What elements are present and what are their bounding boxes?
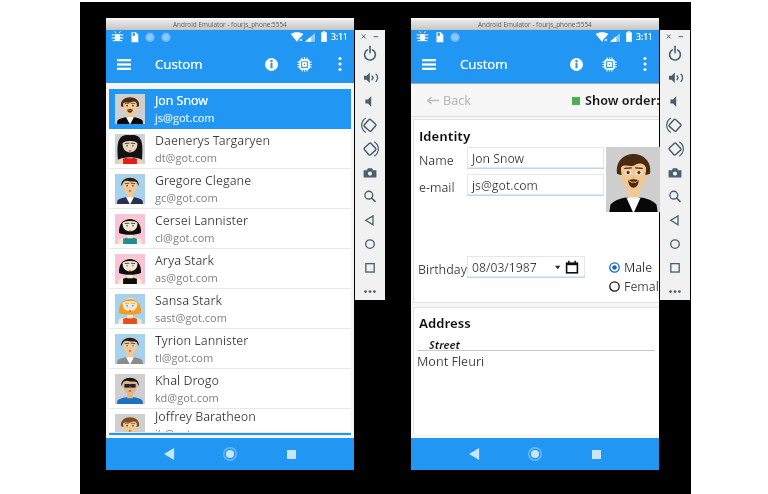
button[interactable]: Back [424, 88, 474, 113]
button[interactable]: Tyrion Lannister [109, 329, 351, 369]
staticText: gc@got.com [155, 190, 218, 205]
staticText: js@got.com [155, 110, 215, 125]
button[interactable]: Femal [609, 278, 659, 295]
button[interactable]: 08/03/1987 [467, 256, 585, 278]
staticText: Cersei Lannister [155, 212, 249, 229]
staticText: Joffrey Baratheon [155, 408, 256, 425]
staticText: Tyrion Lannister [155, 332, 249, 349]
staticText: e-mail [419, 179, 455, 196]
button[interactable]: Jon Snow [467, 147, 604, 169]
button[interactable]: Recent apps [275, 438, 307, 470]
button[interactable]: Back [153, 438, 185, 470]
button[interactable]: Show order: [570, 88, 662, 113]
staticText: cl@got.com [155, 230, 215, 245]
button[interactable]: Arya Stark [109, 249, 351, 289]
staticText: Femal [624, 278, 659, 295]
button[interactable]: js@got.com [467, 174, 604, 196]
staticText: Daenerys Targaryen [155, 132, 271, 149]
staticText: Street [429, 337, 460, 352]
staticText: Sansa Stark [155, 292, 222, 309]
button[interactable]: Cersei Lannister [109, 209, 351, 249]
staticText: Custom [460, 55, 508, 73]
button[interactable]: Settings [289, 49, 319, 79]
button[interactable]: Open navigation drawer [413, 48, 445, 80]
staticText: Birthday [418, 261, 467, 278]
staticText: kd@got.com [155, 390, 219, 405]
staticText: Address [419, 314, 471, 332]
staticText: Identity [419, 127, 471, 145]
staticText: Show order: [585, 92, 660, 109]
button[interactable]: Back [458, 438, 490, 470]
button[interactable]: Sansa Stark [109, 289, 351, 329]
button[interactable]: Open navigation drawer [108, 48, 140, 80]
staticText: Custom [155, 55, 203, 73]
button[interactable]: Male [609, 259, 653, 276]
button[interactable]: Khal Drogo [109, 369, 351, 409]
button[interactable]: Jon Snow [109, 89, 351, 129]
button[interactable]: More options [327, 51, 353, 77]
staticText: dt@got.com [155, 150, 218, 165]
button[interactable]: Home [519, 438, 551, 470]
button[interactable]: Settings [594, 49, 624, 79]
staticText: Android Emulator - fourjs_phone:5554 [173, 20, 287, 29]
button[interactable]: Joffrey Baratheon [109, 409, 351, 433]
staticText: Mont Fleuri [417, 353, 485, 370]
staticText: jb@got.com [155, 426, 217, 432]
staticText: 3:11 [636, 31, 654, 43]
staticText: Male [624, 259, 653, 276]
staticText: 3:11 [331, 31, 349, 43]
staticText: Khal Drogo [155, 372, 220, 389]
staticText: as@got.com [155, 270, 218, 285]
staticText: js@got.com [472, 177, 538, 194]
button[interactable]: Recent apps [580, 438, 612, 470]
button[interactable]: Home [214, 438, 246, 470]
staticText: Gregore Clegane [155, 172, 252, 189]
button[interactable]: Daenerys Targaryen [109, 129, 351, 169]
staticText: Name [419, 152, 454, 169]
staticText: sast@got.com [155, 310, 227, 325]
button[interactable]: Information [561, 49, 591, 79]
staticText: Jon Snow [472, 150, 525, 167]
staticText: Android Emulator - fourjs_phone:5554 [478, 20, 592, 29]
staticText: 08/03/1987 [472, 259, 537, 276]
button[interactable]: Information [256, 49, 286, 79]
button[interactable]: Gregore Clegane [109, 169, 351, 209]
staticText: Arya Stark [155, 252, 214, 269]
staticText: tl@got.com [155, 350, 214, 365]
staticText: Back [443, 92, 471, 109]
staticText: Jon Snow [155, 92, 208, 109]
button[interactable]: More options [632, 51, 658, 77]
